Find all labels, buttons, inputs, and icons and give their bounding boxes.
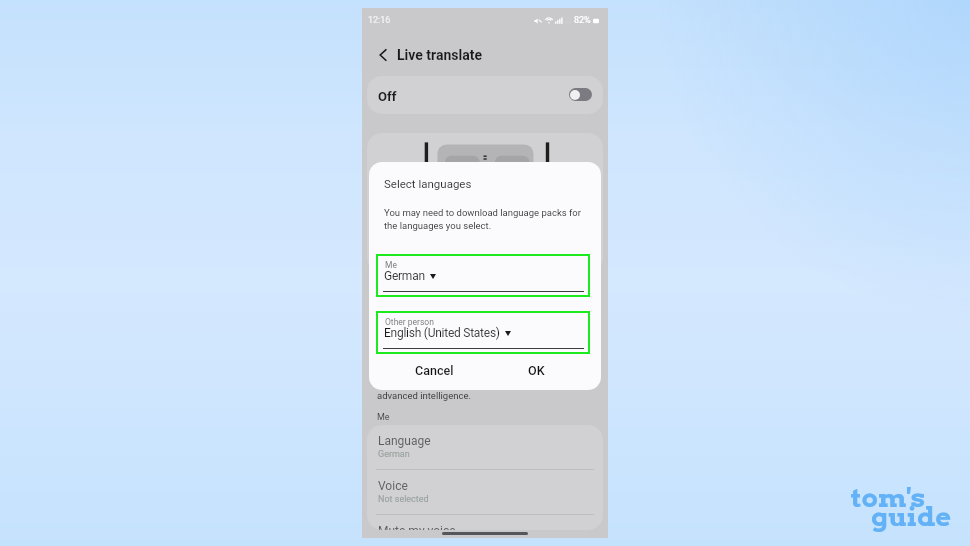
staticText: Off <box>378 89 397 104</box>
staticText: German <box>378 449 410 460</box>
staticText: Other person <box>385 317 434 327</box>
staticText: Language <box>378 434 431 448</box>
staticText: 82% <box>574 15 591 26</box>
button[interactable]: Off <box>367 76 603 114</box>
staticText: Use Live translate for real-time, two-wa… <box>377 363 558 401</box>
button[interactable]: Other person <box>376 311 590 354</box>
staticText: Me <box>377 412 390 423</box>
button[interactable]: Back <box>373 45 393 65</box>
button[interactable]: Cancel <box>401 357 468 383</box>
staticText: Cancel <box>415 363 454 378</box>
button[interactable]: Me <box>376 254 590 297</box>
staticText: Not selected <box>378 494 429 505</box>
staticText: Mute my voice <box>378 524 456 530</box>
staticText: English (United States) <box>384 326 500 340</box>
staticText: tom's <box>851 481 926 514</box>
staticText: guide <box>871 500 952 533</box>
staticText: OK <box>528 363 545 378</box>
button[interactable]: OK <box>503 357 570 383</box>
staticText: 12:16 <box>368 15 391 26</box>
button[interactable]: Language <box>367 425 603 469</box>
staticText: Voice <box>378 479 408 493</box>
staticText: German <box>384 269 425 283</box>
staticText: Live translate <box>397 47 483 63</box>
button[interactable]: Voice <box>367 470 603 514</box>
staticText: Me <box>385 260 397 270</box>
staticText: Select languages <box>384 177 472 190</box>
staticText: You may need to download language packs … <box>384 207 581 232</box>
button[interactable]: Mute my voice <box>367 515 603 530</box>
